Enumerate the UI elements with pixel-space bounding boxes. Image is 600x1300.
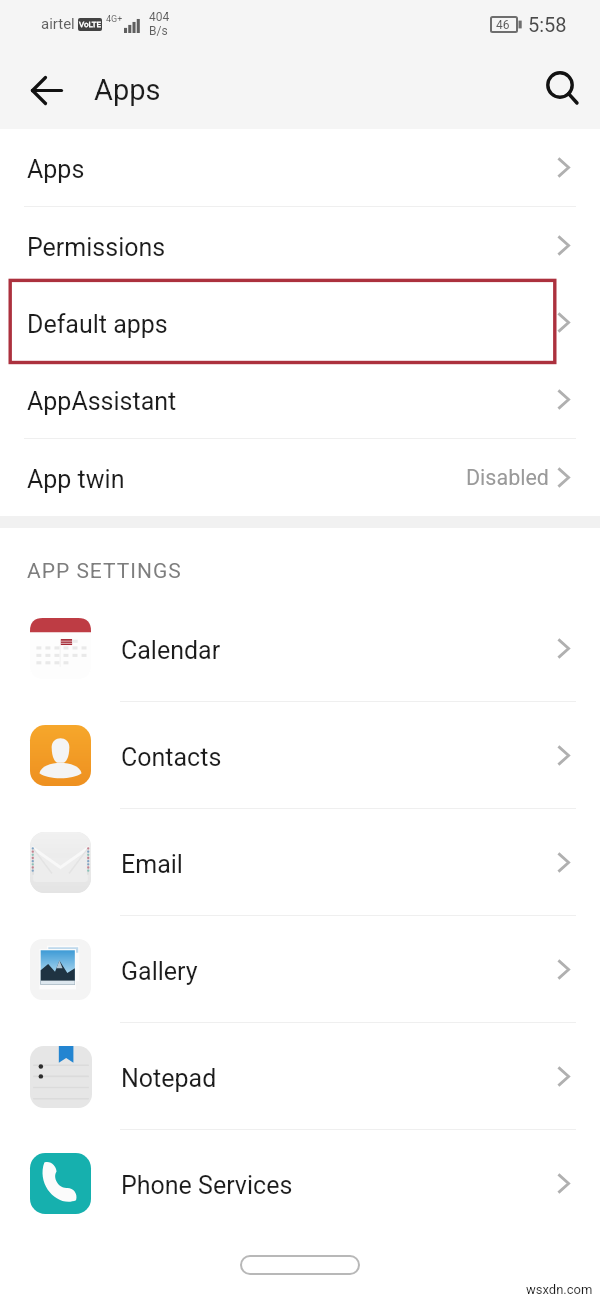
button[interactable]: Phone Services bbox=[0, 1130, 600, 1237]
staticText: APP SETTINGS bbox=[27, 559, 182, 584]
button[interactable]: AppAssistant bbox=[0, 361, 600, 438]
staticText: Email bbox=[121, 850, 183, 879]
button[interactable]: Calendar bbox=[0, 595, 600, 701]
button[interactable]: Permissions bbox=[0, 207, 600, 284]
staticText: 5:58 bbox=[528, 13, 567, 36]
button[interactable]: Notepad bbox=[0, 1023, 600, 1129]
staticText: Phone Services bbox=[121, 1171, 293, 1200]
staticText: Apps bbox=[94, 73, 161, 107]
staticText: B/s bbox=[149, 24, 168, 38]
button[interactable]: Search bbox=[525, 51, 600, 129]
staticText: Contacts bbox=[121, 743, 222, 772]
staticText: Default apps bbox=[27, 310, 168, 339]
staticText: AppAssistant bbox=[27, 387, 177, 416]
staticText: wsxdn.com bbox=[526, 1282, 593, 1297]
button[interactable]: Apps bbox=[0, 129, 600, 206]
staticText: Calendar bbox=[121, 636, 221, 665]
staticText: VoLTE bbox=[79, 20, 102, 29]
staticText: 46 bbox=[496, 18, 510, 32]
button[interactable]: Email bbox=[0, 809, 600, 915]
button[interactable]: Contacts bbox=[0, 702, 600, 808]
staticText: Permissions bbox=[27, 233, 166, 262]
staticText: 4G+ bbox=[106, 14, 123, 25]
staticText: Notepad bbox=[121, 1064, 217, 1093]
button[interactable]: Back bbox=[0, 51, 94, 129]
staticText: Apps bbox=[27, 155, 85, 184]
staticText: 404 bbox=[149, 10, 170, 24]
button[interactable]: Default apps bbox=[0, 284, 600, 361]
staticText: airtel bbox=[41, 15, 75, 33]
staticText: Disabled bbox=[466, 465, 549, 490]
staticText: Gallery bbox=[121, 957, 198, 986]
button[interactable]: App twin bbox=[0, 439, 600, 516]
staticText: App twin bbox=[27, 465, 125, 494]
button[interactable]: Gallery bbox=[0, 916, 600, 1022]
